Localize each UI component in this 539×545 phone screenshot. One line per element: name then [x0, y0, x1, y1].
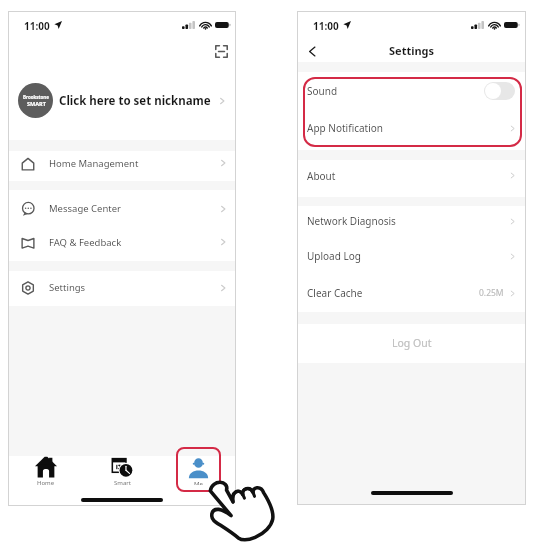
staticText: SMART	[27, 100, 46, 107]
staticText: Home Management	[49, 157, 139, 170]
button[interactable]: Upload Log	[297, 240, 526, 276]
staticText: 11:00	[313, 19, 339, 33]
button[interactable]: Log Out	[297, 324, 526, 363]
staticText: Home	[37, 479, 55, 485]
staticText: Log Out	[392, 336, 432, 350]
button[interactable]: Sound toggle	[484, 82, 515, 100]
staticText: Settings	[49, 281, 86, 294]
button[interactable]: Scan QR code	[209, 39, 233, 63]
staticText: Brookstone	[23, 94, 49, 100]
button[interactable]: About	[297, 160, 526, 197]
button[interactable]: Settings	[8, 271, 236, 306]
button[interactable]: Home	[8, 456, 84, 485]
staticText: Settings	[389, 43, 435, 58]
button[interactable]: Clear Cache	[297, 276, 526, 312]
button[interactable]: Home Management	[8, 151, 236, 181]
staticText: Smart	[114, 479, 131, 485]
staticText: Message Center	[49, 202, 122, 215]
staticText: FAQ & Feedback	[49, 236, 122, 249]
staticText: Sound	[307, 84, 338, 98]
button[interactable]: Brookstone	[8, 76, 236, 125]
button[interactable]: Network Diagnosis	[297, 206, 526, 240]
staticText: Click here to set nickname	[59, 93, 211, 109]
staticText: Me	[194, 480, 203, 485]
staticText: Clear Cache	[307, 286, 363, 300]
button[interactable]: Smart	[84, 456, 160, 485]
button[interactable]: Me	[160, 456, 236, 485]
staticText: Network Diagnosis	[307, 214, 396, 228]
staticText: About	[307, 169, 336, 183]
staticText: App Notification	[307, 121, 383, 135]
button[interactable]: FAQ & Feedback	[8, 227, 236, 261]
button[interactable]: Sound	[297, 72, 526, 112]
button[interactable]: Message Center	[8, 190, 236, 227]
staticText: Upload Log	[307, 249, 361, 263]
button[interactable]: App Notification	[297, 112, 526, 150]
staticText: 0.25M	[479, 287, 504, 299]
button[interactable]: Back	[301, 40, 323, 62]
staticText: 11:00	[24, 19, 50, 33]
